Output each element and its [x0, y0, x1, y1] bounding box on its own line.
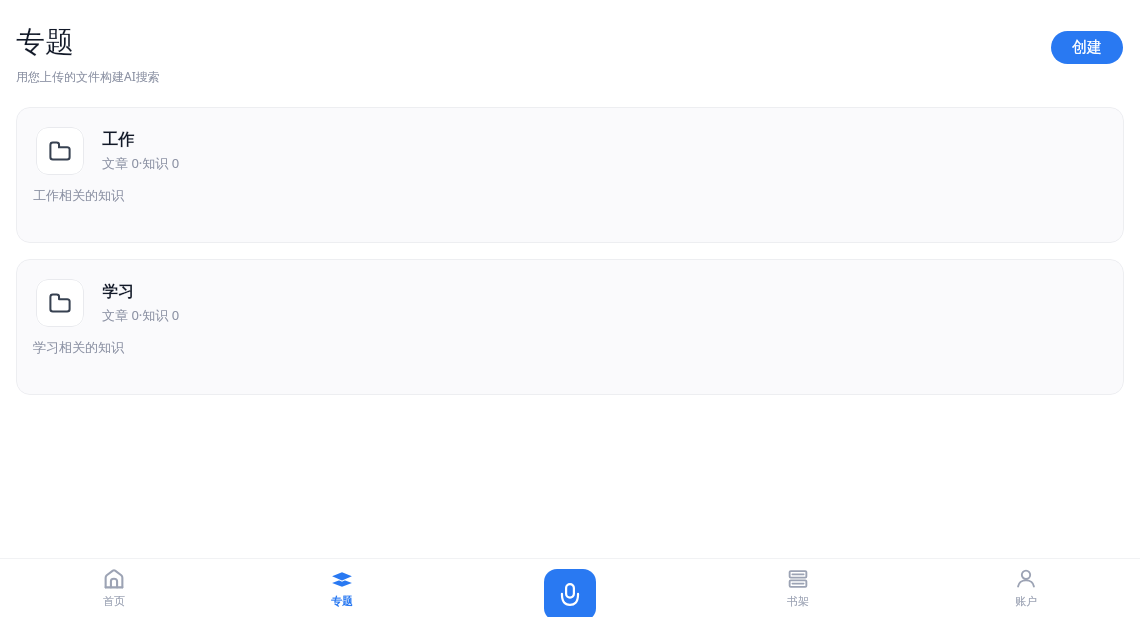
staticText: 学习相关的知识 — [33, 339, 124, 355]
button[interactable]: 专题 — [228, 558, 456, 617]
staticText: 工作 — [102, 130, 134, 150]
staticText: 首页 — [103, 594, 125, 608]
button[interactable]: 账户 — [912, 558, 1140, 617]
staticText: 用您上传的文件构建AI搜索 — [16, 68, 160, 84]
button[interactable]: 学习 — [16, 259, 1124, 395]
staticText: 专题 — [331, 594, 353, 608]
button[interactable]: Voice input — [544, 569, 596, 617]
staticText: 书架 — [787, 594, 809, 608]
staticText: 工作相关的知识 — [33, 187, 124, 203]
staticText: 账户 — [1015, 594, 1037, 608]
button[interactable]: 书架 — [684, 558, 912, 617]
button[interactable]: 工作 — [16, 107, 1124, 243]
staticText: 文章 0·知识 0 — [102, 154, 180, 172]
staticText: 文章 0·知识 0 — [102, 306, 180, 324]
staticText: 学习 — [102, 282, 134, 302]
staticText: 专题 — [16, 24, 74, 61]
button[interactable]: 首页 — [0, 558, 228, 617]
button[interactable]: 创建 — [1051, 31, 1123, 64]
staticText: 创建 — [1072, 38, 1102, 57]
